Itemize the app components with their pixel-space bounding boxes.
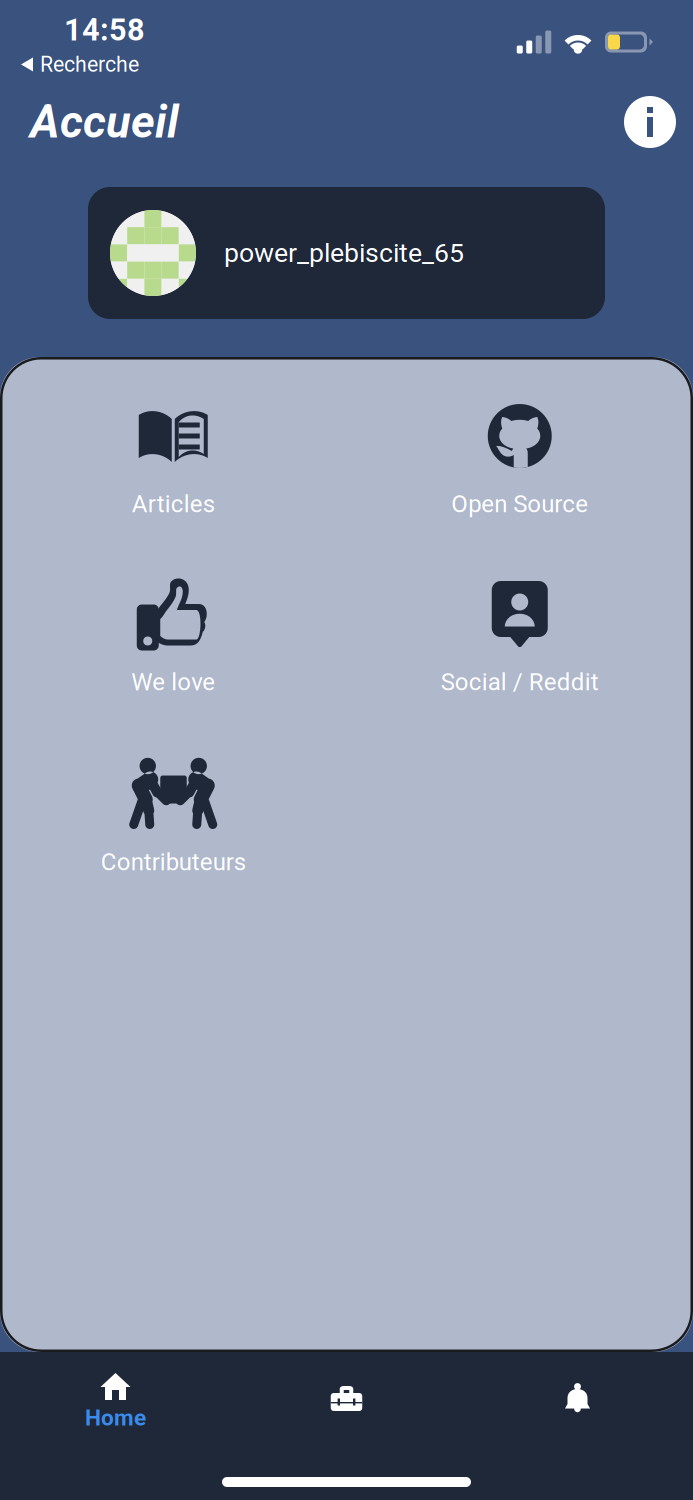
button[interactable]: Informations <box>613 89 687 155</box>
staticText: Home <box>85 1404 146 1431</box>
button[interactable]: Articles <box>0 393 346 529</box>
staticText: Open Source <box>451 490 588 518</box>
button[interactable]: Contributeurs <box>0 751 346 887</box>
staticText: 14:58 <box>64 12 145 48</box>
button[interactable]: Open Source <box>346 393 693 529</box>
button[interactable]: Social / Reddit <box>346 571 693 707</box>
button[interactable]: Home <box>0 1373 231 1431</box>
staticText: Recherche <box>40 52 139 77</box>
button[interactable]: We love <box>0 571 346 707</box>
staticText: We love <box>131 668 215 696</box>
button[interactable]: Outils <box>231 1373 462 1431</box>
staticText: Social / Reddit <box>441 668 599 696</box>
staticText: Accueil <box>30 95 179 148</box>
staticText: power_plebiscite_65 <box>224 237 464 269</box>
button[interactable]: power_plebiscite_65 <box>88 187 605 319</box>
button[interactable]: Notifications <box>462 1373 693 1431</box>
staticText: Contributeurs <box>101 848 246 876</box>
staticText: Articles <box>132 490 215 518</box>
